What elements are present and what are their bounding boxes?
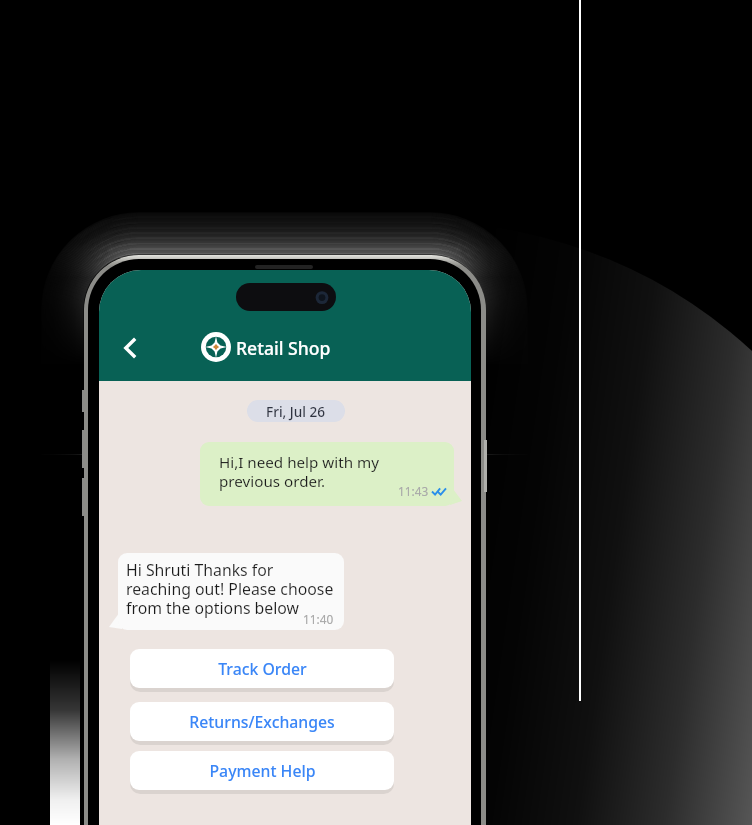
staticText: 11:40: [303, 611, 334, 627]
button[interactable]: Track Order: [130, 649, 394, 688]
button[interactable]: Back: [108, 326, 152, 370]
button[interactable]: Payment Help: [130, 751, 394, 790]
staticText: Fri, Jul 26: [266, 402, 326, 421]
staticText: Hi Shruti Thanks for reaching out! Pleas…: [126, 559, 334, 618]
button[interactable]: Fri, Jul 26: [247, 400, 345, 422]
staticText: Hi,I need help with my previous order.: [219, 452, 379, 492]
staticText: 11:43: [398, 483, 429, 499]
button[interactable]: Returns/Exchanges: [130, 702, 394, 741]
staticText: Returns/Exchanges: [189, 711, 335, 733]
staticText: Track Order: [218, 658, 307, 680]
staticText: Payment Help: [209, 760, 316, 782]
staticText: Retail Shop: [236, 336, 331, 360]
